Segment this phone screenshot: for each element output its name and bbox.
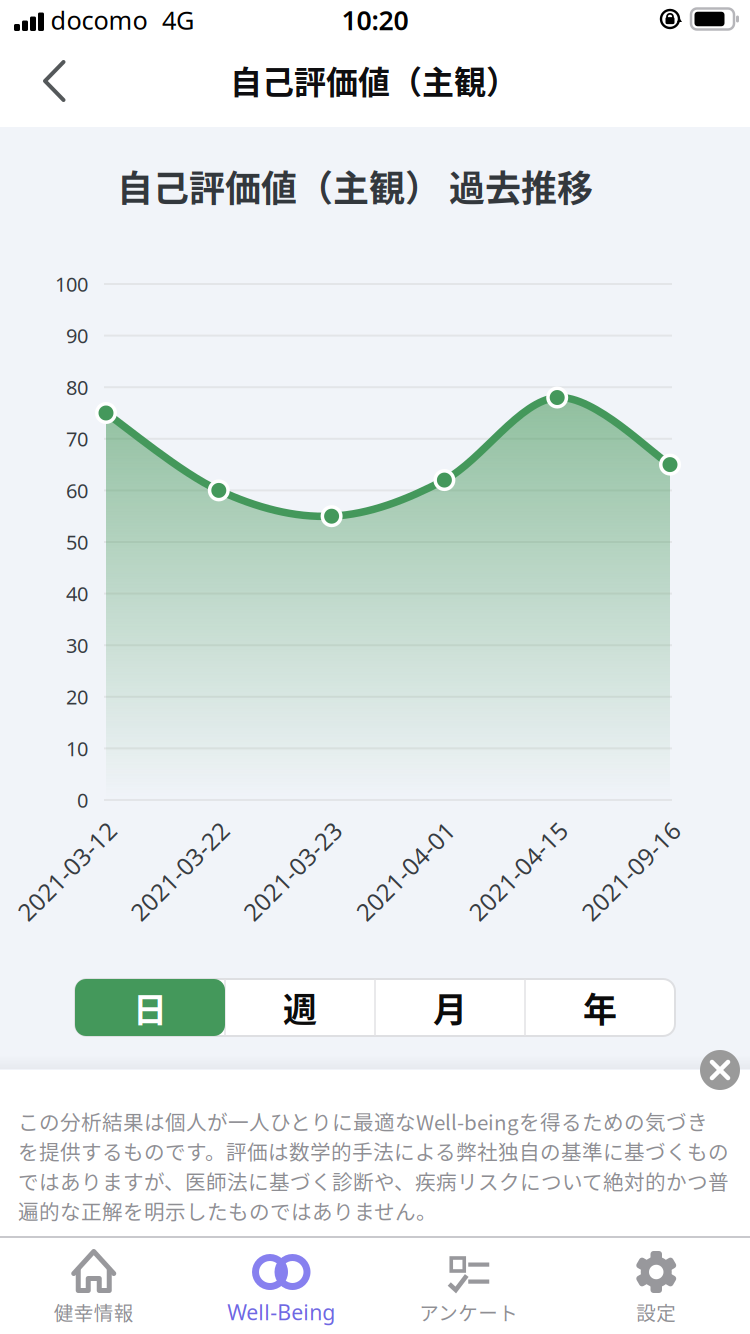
staticText: 40: [66, 580, 88, 607]
button[interactable]: Back: [33, 54, 77, 110]
staticText: 年: [583, 983, 617, 1032]
staticText: 80: [66, 374, 88, 400]
button[interactable]: 月: [376, 979, 524, 1036]
staticText: 日: [133, 983, 167, 1032]
staticText: 設定: [636, 1298, 676, 1326]
staticText: 2021-03-23: [229, 855, 357, 887]
staticText: 50: [66, 529, 88, 555]
staticText: 自己評価値（主観）: [230, 57, 518, 103]
button[interactable]: Close: [700, 1050, 740, 1090]
staticText: 2021-04-15: [454, 855, 582, 887]
staticText: 遍的な正解を明示したものではありません。: [18, 1196, 437, 1226]
staticText: 月: [433, 983, 467, 1032]
staticText: 30: [66, 632, 88, 658]
button[interactable]: 年: [526, 979, 674, 1036]
staticText: 2021-09-16: [567, 855, 695, 887]
staticText: 20: [66, 683, 88, 710]
staticText: 70: [66, 425, 88, 452]
staticText: 2021-03-22: [116, 855, 244, 887]
staticText: 2021-03-12: [3, 855, 131, 887]
button[interactable]: アンケート: [376, 1236, 562, 1334]
staticText: 90: [66, 322, 88, 349]
staticText: アンケート: [419, 1298, 518, 1326]
button[interactable]: 週: [226, 979, 374, 1036]
staticText: Well-Being: [227, 1298, 335, 1326]
staticText: 60: [66, 477, 88, 504]
staticText: 自己評価値（主観） 過去推移: [117, 160, 593, 212]
staticText: を提供するものです。評価は数学的手法による弊社独自の基準に基づくもの: [18, 1136, 729, 1166]
button[interactable]: 設定: [563, 1236, 749, 1334]
staticText: 10: [66, 735, 88, 762]
staticText: 4G: [162, 3, 194, 37]
staticText: 10:20: [341, 2, 408, 38]
staticText: この分析結果は個人が一人ひとりに最適なWell-beingを得るための気づき: [18, 1106, 708, 1136]
staticText: 健幸情報: [54, 1298, 134, 1326]
staticText: 週: [283, 983, 317, 1032]
staticText: 0: [77, 787, 88, 813]
staticText: ではありますが、医師法に基づく診断や、疾病リスクについて絶対的かつ普: [18, 1166, 729, 1196]
button[interactable]: Well-Being: [188, 1236, 374, 1334]
staticText: docomo: [50, 3, 147, 37]
button[interactable]: 健幸情報: [1, 1236, 187, 1334]
staticText: 100: [55, 271, 88, 297]
staticText: 2021-04-01: [341, 855, 469, 887]
button[interactable]: 日: [75, 979, 225, 1036]
